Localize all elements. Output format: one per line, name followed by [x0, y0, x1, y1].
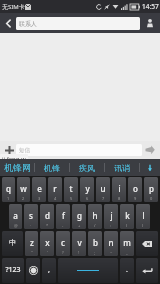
button[interactable]: Backspace — [136, 231, 158, 256]
staticText: l — [142, 210, 145, 221]
staticText: 7 — [102, 196, 105, 201]
button[interactable]: t — [64, 177, 78, 202]
staticText: 机锋 — [44, 163, 60, 173]
button[interactable]: Input method — [26, 258, 40, 283]
staticText: 2 — [22, 196, 25, 201]
button[interactable]: 疾风 — [70, 159, 104, 176]
staticText: q — [6, 183, 11, 194]
staticText: h — [92, 210, 98, 221]
staticText: e — [37, 183, 42, 194]
staticText: t — [69, 183, 73, 194]
button[interactable]: Enter — [136, 258, 158, 283]
button[interactable]: e — [32, 177, 46, 202]
staticText: ! — [78, 250, 80, 255]
staticText: s — [29, 210, 33, 221]
button[interactable]: Contacts — [140, 13, 160, 33]
button[interactable]: w — [17, 177, 30, 202]
button[interactable]: Back — [0, 13, 16, 33]
staticText: " — [31, 250, 33, 255]
staticText: ?123 — [5, 265, 21, 275]
button[interactable]: k — [120, 204, 134, 229]
button[interactable]: m — [120, 231, 134, 256]
staticText: ~ — [110, 250, 113, 255]
button[interactable]: Add attachment — [2, 143, 16, 157]
button[interactable]: c — [56, 231, 70, 256]
button[interactable]: More candidates — [140, 159, 160, 176]
button[interactable]: p — [144, 177, 158, 202]
button[interactable]: l — [136, 204, 150, 229]
button[interactable]: h — [88, 204, 102, 229]
staticText: 4 — [54, 196, 57, 201]
button[interactable]: , — [42, 258, 56, 283]
button[interactable]: s — [24, 204, 38, 229]
staticText: ( — [126, 223, 128, 228]
staticText: x — [45, 237, 50, 248]
staticText: _ — [126, 250, 128, 255]
staticText: 14:57 — [142, 2, 159, 11]
staticText: k — [125, 210, 130, 221]
button[interactable]: q — [2, 177, 15, 202]
staticText: r — [53, 183, 57, 194]
button[interactable]: d — [40, 204, 54, 229]
button[interactable]: . — [120, 258, 134, 283]
staticText: ) — [142, 223, 144, 228]
staticText: g — [77, 210, 82, 221]
staticText: 短信 — [19, 147, 30, 154]
button[interactable]: 讯诮 — [105, 159, 139, 176]
staticText: - — [62, 223, 64, 228]
other: Input method — [26, 258, 40, 283]
staticText: 讯诮 — [114, 163, 130, 173]
staticText: @ — [14, 223, 18, 228]
button[interactable]: v — [72, 231, 86, 256]
staticText: · — [30, 223, 32, 228]
other: Backspace — [136, 231, 158, 256]
button[interactable]: a — [9, 204, 22, 229]
staticText: 机锋网 — [4, 162, 31, 173]
button[interactable]: i — [112, 177, 126, 202]
staticText: f — [62, 210, 65, 221]
button[interactable]: o — [128, 177, 142, 202]
button[interactable]: Send — [142, 142, 158, 158]
button[interactable]: f — [56, 204, 70, 229]
staticText: , — [48, 265, 50, 275]
staticText: 5 — [70, 196, 73, 201]
staticText: o — [133, 183, 138, 194]
button[interactable]: ?123 — [2, 258, 24, 283]
staticText: . — [126, 265, 128, 275]
staticText: 无SIM卡 — [2, 3, 25, 11]
staticText: 8 — [118, 196, 121, 201]
staticText: 中 — [9, 238, 16, 247]
button[interactable]: 机锋 — [35, 159, 69, 176]
button[interactable]: 机锋网 — [0, 159, 34, 176]
staticText: 联系人 — [19, 20, 37, 28]
button[interactable]: 短信 — [16, 144, 142, 156]
other: Space — [58, 258, 118, 283]
staticText: ' — [47, 250, 48, 255]
button[interactable]: Space — [58, 258, 118, 283]
button[interactable]: n — [104, 231, 118, 256]
button[interactable]: r — [48, 177, 62, 202]
button[interactable]: 联系人 — [16, 17, 140, 30]
button[interactable]: z — [25, 231, 38, 256]
staticText: n — [108, 237, 114, 248]
staticText: * — [46, 223, 49, 228]
staticText: a — [13, 210, 18, 221]
staticText: + — [78, 223, 81, 228]
staticText: 0 — [150, 196, 153, 201]
staticText: 3 — [38, 196, 41, 201]
staticText: m — [123, 237, 131, 248]
staticText: p — [149, 183, 154, 194]
staticText: j — [110, 210, 113, 221]
button[interactable]: g — [72, 204, 86, 229]
staticText: i — [118, 183, 121, 194]
button[interactable]: b — [88, 231, 102, 256]
button[interactable]: 中 — [2, 231, 23, 256]
button[interactable]: j — [104, 204, 118, 229]
button[interactable]: y — [80, 177, 94, 202]
other: Enter — [136, 258, 158, 283]
staticText: z — [30, 237, 34, 248]
button[interactable]: x — [40, 231, 54, 256]
staticText: ji feng w — [2, 155, 26, 163]
staticText: ? — [62, 250, 64, 255]
button[interactable]: u — [96, 177, 110, 202]
